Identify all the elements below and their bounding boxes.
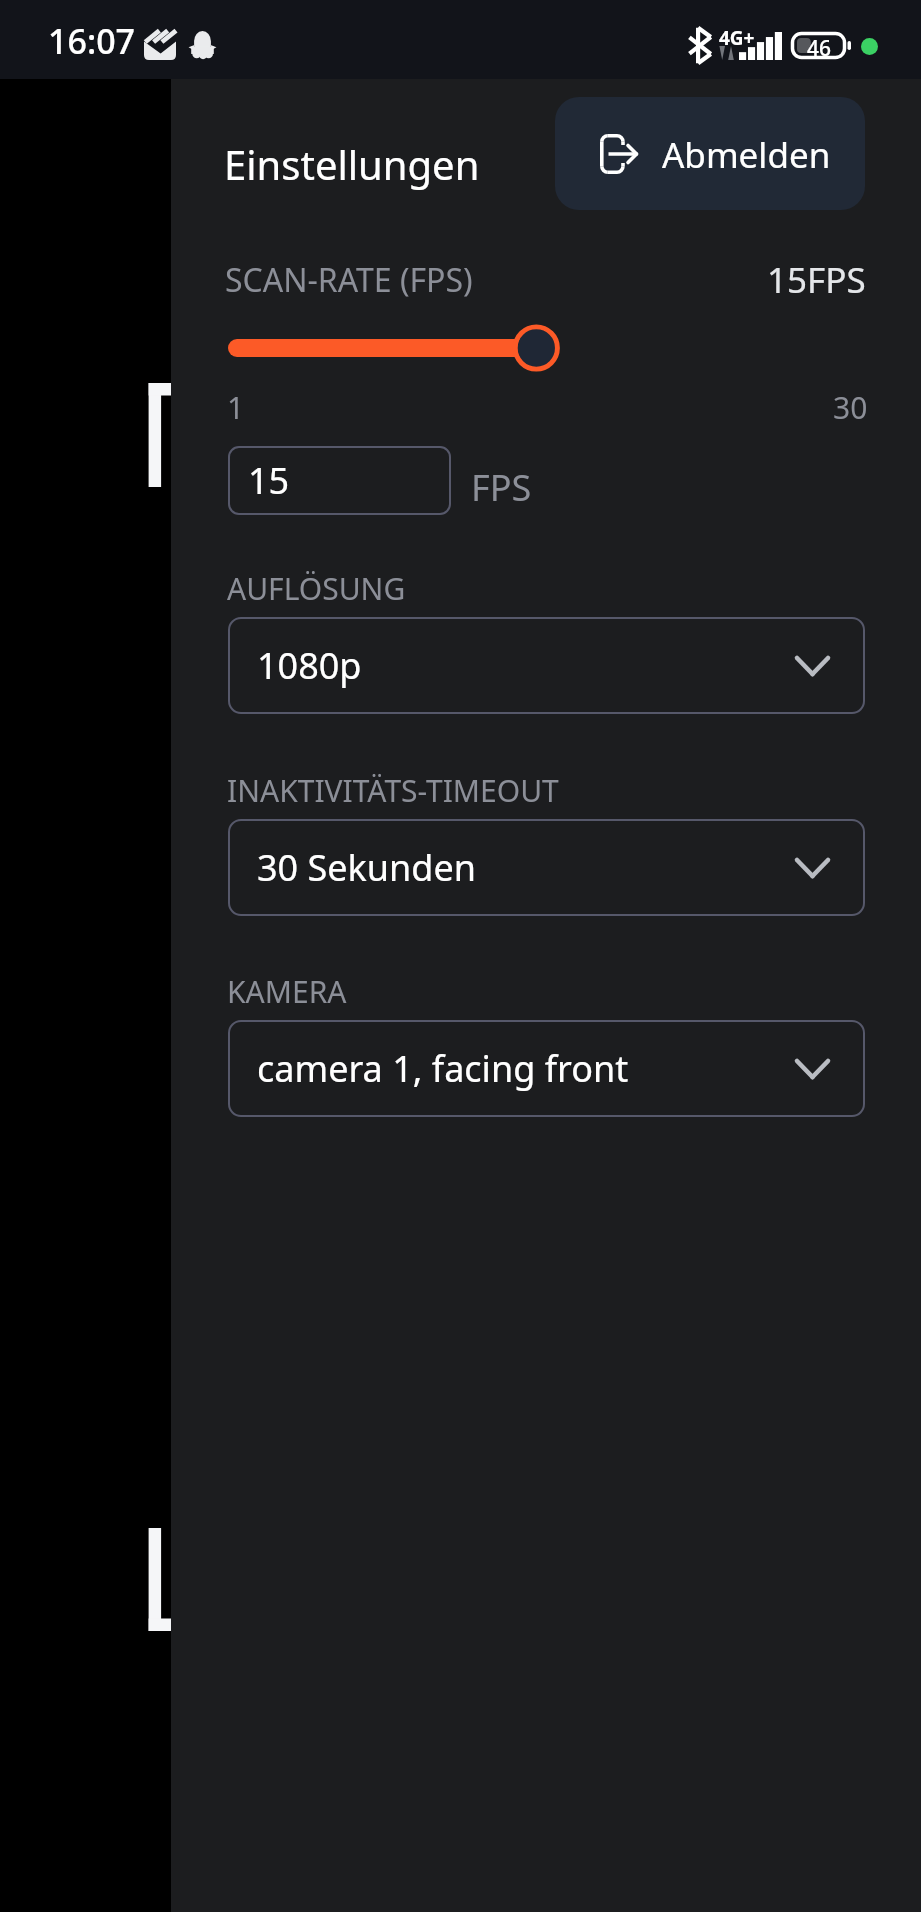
staticText: FPS: [471, 463, 532, 512]
button[interactable]: 1080p: [228, 617, 865, 714]
button[interactable]: Log out: [555, 97, 865, 210]
staticText: 30 Sekunden: [257, 843, 477, 892]
staticText: KAMERA: [227, 971, 347, 1012]
staticText: 4G+: [719, 25, 755, 51]
staticText: SCAN-RATE (FPS): [225, 258, 473, 302]
staticText: 1080p: [257, 641, 362, 690]
staticText: 1: [227, 387, 245, 428]
button[interactable]: 15: [228, 446, 451, 515]
staticText: 15FPS: [767, 256, 866, 304]
staticText: Abmelden: [662, 131, 831, 179]
staticText: 16:07: [48, 18, 136, 64]
other: Log out: [600, 134, 638, 174]
button[interactable]: 30 Sekunden: [228, 819, 865, 916]
staticText: AUFLÖSUNG: [227, 568, 406, 609]
staticText: 46: [807, 34, 832, 63]
button[interactable]: camera 1, facing front: [228, 1020, 865, 1117]
staticText: 15: [248, 456, 290, 505]
staticText: INAKTIVITÄTS-TIMEOUT: [227, 770, 559, 811]
staticText: 30: [833, 387, 868, 428]
staticText: camera 1, facing front: [257, 1044, 629, 1093]
button[interactable]: Scan rate slider: [221, 325, 873, 371]
staticText: Einstellungen: [224, 137, 480, 191]
